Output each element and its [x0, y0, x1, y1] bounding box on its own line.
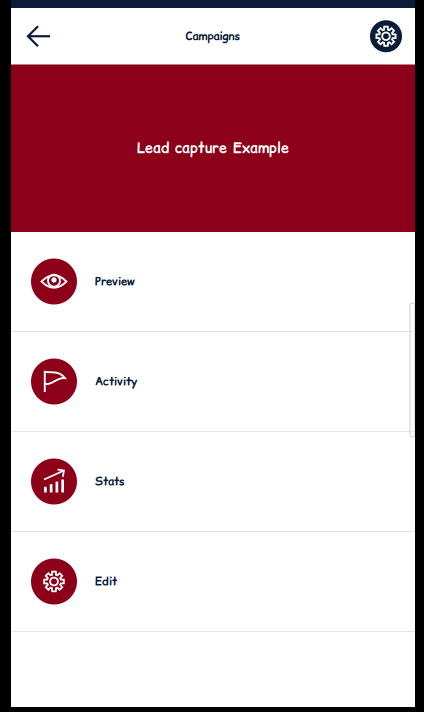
button[interactable]: Stats: [11, 432, 415, 532]
staticText: Stats: [95, 474, 125, 489]
button[interactable]: Settings: [365, 15, 407, 57]
staticText: Edit: [95, 574, 117, 589]
staticText: Campaigns: [185, 28, 240, 44]
staticText: Lead capture Example: [137, 138, 289, 158]
staticText: Activity: [95, 374, 137, 389]
button[interactable]: Activity: [11, 332, 415, 432]
button[interactable]: Edit: [11, 532, 415, 632]
button[interactable]: Preview: [11, 232, 415, 332]
staticText: Preview: [95, 274, 135, 289]
button[interactable]: Back: [19, 17, 59, 55]
